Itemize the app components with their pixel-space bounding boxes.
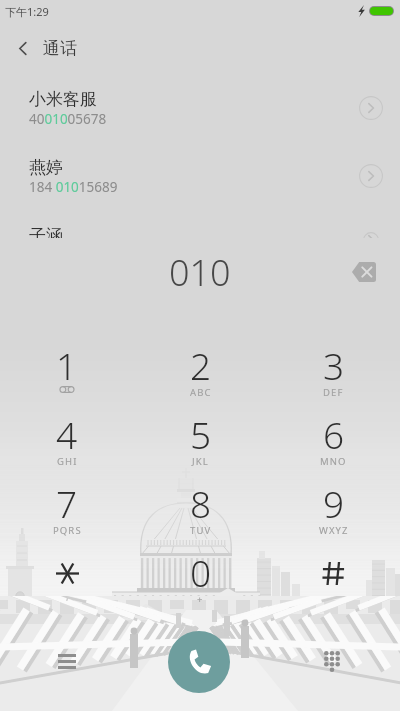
staticText: 0	[190, 547, 212, 597]
staticText: 4	[56, 409, 78, 459]
button[interactable]: 8	[134, 473, 267, 542]
staticText: TUV	[190, 524, 212, 537]
staticText: 燕婷	[29, 157, 63, 178]
button[interactable]: 9	[267, 473, 400, 542]
button[interactable]: 2	[134, 335, 267, 404]
staticText: 子涵	[29, 225, 63, 238]
staticText: MNO	[320, 455, 347, 468]
button[interactable]: Dialpad	[315, 644, 349, 678]
button[interactable]: Menu	[50, 644, 84, 678]
button[interactable]: Contact details	[359, 232, 383, 238]
staticText: ,	[66, 589, 69, 603]
button[interactable]: 5	[134, 404, 267, 473]
button[interactable]: 0	[134, 542, 267, 611]
button[interactable]: Call	[168, 631, 230, 693]
button[interactable]: 3	[267, 335, 400, 404]
staticText: 8	[190, 478, 212, 528]
button[interactable]: 4	[0, 404, 134, 473]
button[interactable]: 6	[267, 404, 400, 473]
button[interactable]: 子涵	[0, 222, 400, 238]
button[interactable]: Star	[0, 542, 134, 611]
button[interactable]: Contact details	[359, 164, 383, 188]
staticText: 1	[56, 340, 78, 390]
staticText: 5	[190, 409, 212, 459]
staticText: 184 01015689	[29, 178, 118, 196]
button[interactable]: 燕婷	[0, 154, 400, 222]
button[interactable]: 7	[0, 473, 134, 542]
staticText: GHI	[57, 455, 78, 468]
button[interactable]: 小米客服	[0, 86, 400, 154]
staticText: 下午1:29	[5, 4, 49, 19]
staticText: 7	[56, 478, 78, 528]
staticText: JKL	[192, 455, 209, 468]
staticText: 3	[323, 340, 345, 390]
button[interactable]: Back	[8, 33, 38, 63]
staticText: 小米客服	[29, 89, 97, 110]
staticText: 6	[323, 409, 345, 459]
staticText: PQRS	[53, 524, 82, 537]
staticText: 9	[323, 478, 345, 528]
button[interactable]: Pound	[267, 542, 400, 611]
staticText: ABC	[190, 386, 212, 399]
button[interactable]: Contact details	[359, 96, 383, 120]
button[interactable]: Backspace	[347, 255, 381, 289]
staticText: DEF	[323, 386, 344, 399]
staticText: 通话	[43, 38, 77, 59]
staticText: WXYZ	[319, 524, 349, 537]
staticText: +	[197, 593, 204, 606]
staticText: 010	[169, 248, 231, 297]
staticText: 4001005678	[29, 110, 107, 128]
staticText: 2	[190, 340, 212, 390]
button[interactable]: 1	[0, 335, 134, 404]
